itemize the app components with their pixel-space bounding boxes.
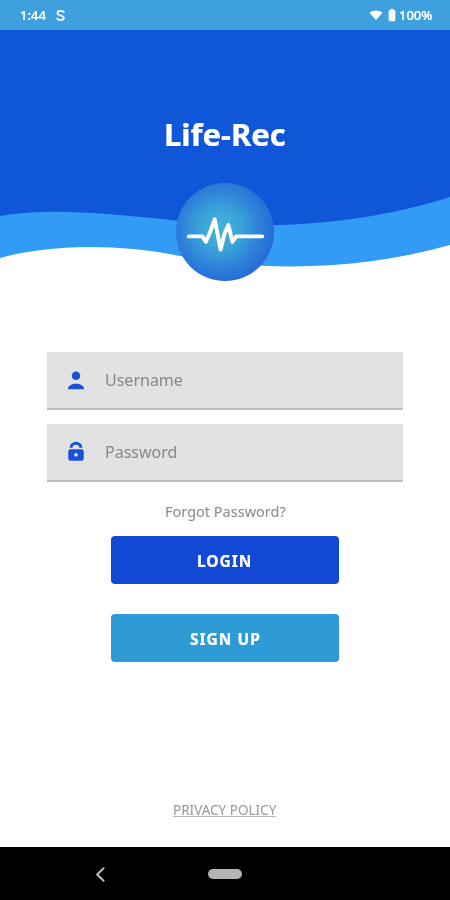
staticText: Username: [105, 369, 183, 391]
button[interactable]: LOGIN: [111, 536, 339, 584]
staticText: LOGIN: [197, 550, 253, 571]
staticText: Password: [105, 441, 178, 463]
staticText: PRIVACY POLICY: [173, 801, 277, 819]
button[interactable]: Password: [47, 424, 403, 482]
staticText: Life-Rec: [164, 113, 286, 155]
button[interactable]: Username: [47, 352, 403, 410]
staticText: SIGN UP: [190, 628, 261, 649]
button[interactable]: SIGN UP: [111, 614, 339, 662]
staticText: 100%: [399, 6, 433, 24]
button[interactable]: Forgot Password?: [159, 499, 292, 523]
staticText: Forgot Password?: [165, 501, 286, 521]
button[interactable]: Back: [78, 852, 122, 896]
button[interactable]: PRIVACY POLICY: [165, 797, 285, 823]
staticText: 1:44: [20, 6, 46, 24]
button[interactable]: Home: [193, 860, 257, 888]
